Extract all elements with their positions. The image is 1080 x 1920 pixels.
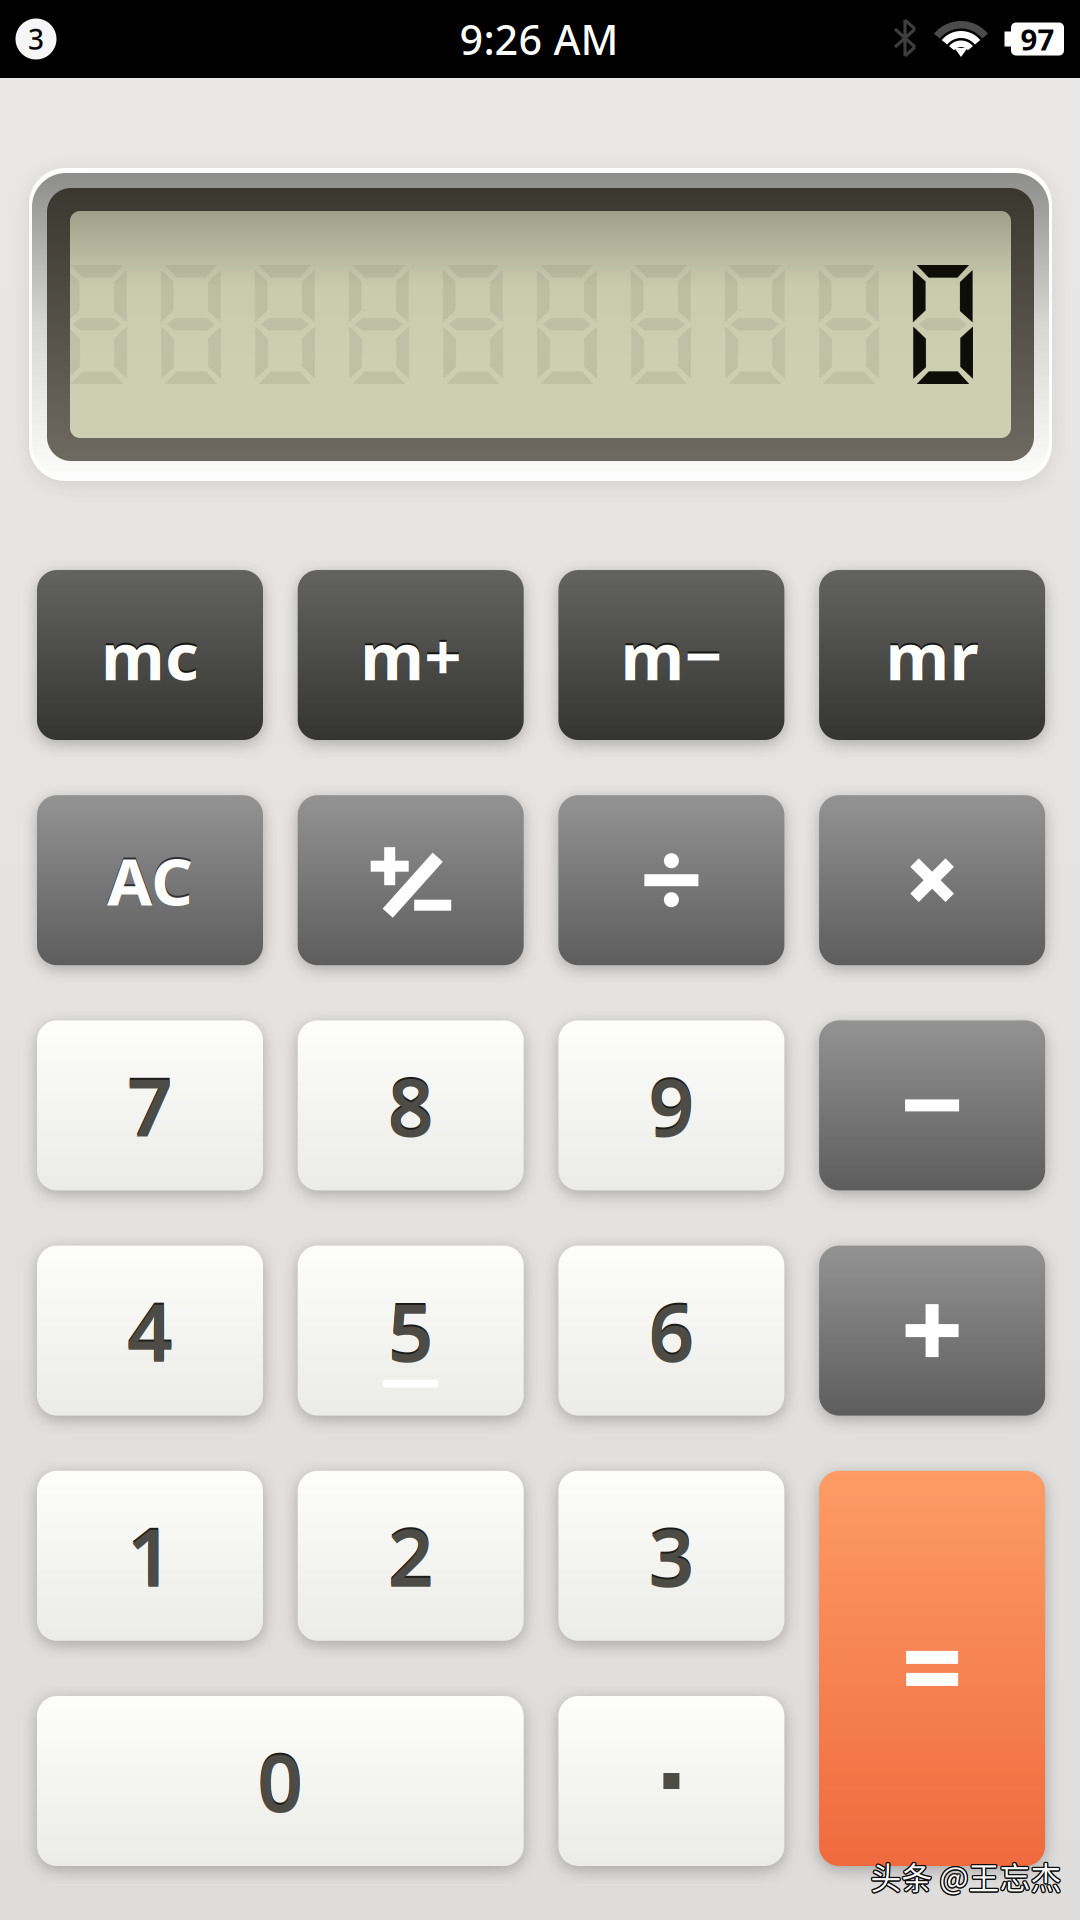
staticText: 1 <box>127 1501 173 1607</box>
staticText: 头条 @王忘杰 <box>871 1853 1062 1897</box>
button[interactable]: Plus <box>819 1246 1045 1416</box>
staticText: m+ <box>360 610 461 696</box>
staticText: 0 <box>257 1728 303 1834</box>
staticText: 8 <box>388 1050 434 1156</box>
staticText: 头条 @王忘杰 <box>871 1855 1062 1899</box>
staticText: m+ <box>360 612 461 698</box>
button[interactable]: Equals <box>819 1471 1045 1866</box>
staticText: 头条 @王忘杰 <box>869 1854 1060 1898</box>
staticText: 9 <box>648 1050 694 1156</box>
staticText: 头条 @王忘杰 <box>869 1855 1060 1899</box>
staticText: 9 <box>648 1052 694 1158</box>
staticText: 8888888888 <box>50 245 990 396</box>
button[interactable]: Multiply <box>819 795 1045 965</box>
staticText: 6 <box>648 1277 694 1384</box>
button[interactable]: 1 <box>37 1471 263 1641</box>
staticText: 0 <box>257 1726 303 1832</box>
staticText: mc <box>101 612 199 698</box>
staticText: 头条 @王忘杰 <box>870 1855 1061 1899</box>
button[interactable]: 3 <box>558 1471 784 1641</box>
button[interactable]: 5 <box>298 1246 524 1416</box>
staticText: 3 <box>648 1503 694 1609</box>
staticText: m− <box>620 610 722 696</box>
staticText: 8 <box>388 1052 434 1158</box>
staticText: mr <box>886 610 979 696</box>
staticText: 头条 @王忘杰 <box>869 1853 1060 1897</box>
staticText: 6 <box>648 1275 694 1382</box>
staticText: mc <box>101 610 199 696</box>
button[interactable]: 7 <box>37 1020 263 1190</box>
staticText: 2 <box>388 1503 434 1609</box>
staticText: 头条 @王忘杰 <box>870 1854 1061 1898</box>
staticText: 头条 @王忘杰 <box>872 1854 1063 1898</box>
staticText: 7 <box>127 1050 173 1156</box>
staticText: 0 <box>896 245 990 396</box>
button[interactable]: All clear <box>37 795 263 965</box>
staticText: 4 <box>127 1275 173 1382</box>
staticText: 5 <box>388 1277 434 1384</box>
staticText: 3 <box>648 1501 694 1607</box>
staticText: AC <box>107 835 193 922</box>
button[interactable]: Plus minus <box>298 795 524 965</box>
button[interactable]: Decimal point <box>558 1696 784 1866</box>
button[interactable]: Divide <box>558 795 784 965</box>
button[interactable]: Memory subtract <box>558 570 784 740</box>
button[interactable]: 6 <box>558 1246 784 1416</box>
button[interactable]: Memory clear <box>37 570 263 740</box>
button[interactable]: Minus <box>819 1020 1045 1190</box>
staticText: 1 <box>127 1503 173 1609</box>
staticText: 5 <box>388 1275 434 1382</box>
staticText: 4 <box>127 1277 173 1384</box>
button[interactable]: Memory add <box>298 570 524 740</box>
button[interactable]: 2 <box>298 1471 524 1641</box>
button[interactable]: 9 <box>558 1020 784 1190</box>
staticText: 97 <box>1020 19 1054 58</box>
staticText: 9:26 AM <box>459 12 618 66</box>
staticText: mr <box>886 612 979 698</box>
staticText: AC <box>107 837 193 924</box>
staticText: 2 <box>388 1501 434 1607</box>
staticText: m− <box>620 612 722 698</box>
button[interactable]: 0 <box>37 1696 524 1866</box>
staticText: 3 <box>28 20 44 58</box>
button[interactable]: 8 <box>298 1020 524 1190</box>
button[interactable]: Memory recall <box>819 570 1045 740</box>
staticText: 头条 @王忘杰 <box>870 1852 1061 1897</box>
staticText: 7 <box>127 1052 173 1158</box>
button[interactable]: 4 <box>37 1246 263 1416</box>
